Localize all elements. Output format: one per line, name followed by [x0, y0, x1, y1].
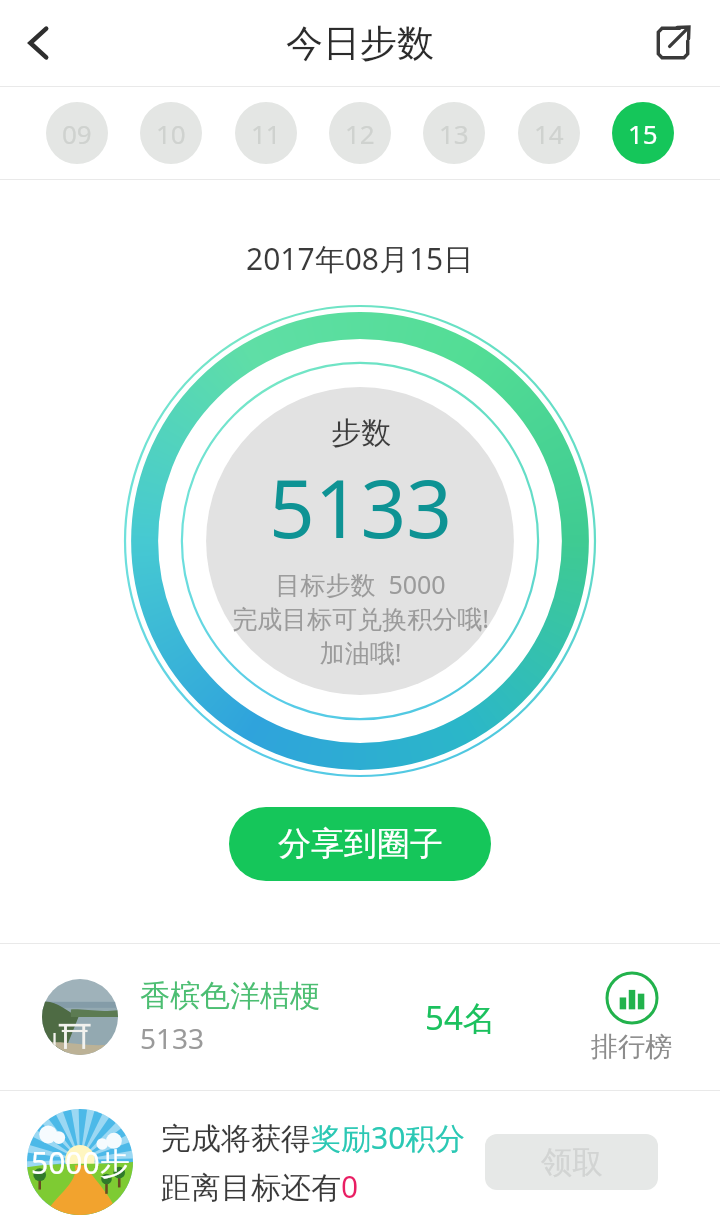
staticText: 5133: [269, 452, 453, 561]
staticText: 13: [439, 116, 469, 151]
staticText: 12: [345, 116, 375, 151]
staticText: 09: [62, 116, 92, 151]
button[interactable]: 14: [518, 102, 580, 164]
staticText: 10: [156, 116, 186, 151]
button[interactable]: 分享到圈子: [229, 807, 491, 881]
staticText: 2017年08月15日: [246, 238, 474, 279]
staticText: 目标步数 5000 完成目标可兑换积分哦! 加油哦!: [232, 567, 489, 669]
button[interactable]: 12: [329, 102, 391, 164]
staticText: 完成将获得奖励30积分: [161, 1117, 466, 1158]
staticText: 香槟色洋桔梗: [140, 977, 320, 1015]
staticText: 14: [534, 116, 564, 151]
button[interactable]: 排行榜: [591, 971, 672, 1064]
staticText: 步数: [331, 414, 391, 452]
staticText: 距离目标还有0: [161, 1166, 359, 1207]
staticText: 11: [251, 116, 281, 151]
button[interactable]: Share: [640, 10, 706, 76]
button[interactable]: 09: [46, 102, 108, 164]
button[interactable]: 15: [612, 102, 674, 164]
button[interactable]: 13: [423, 102, 485, 164]
staticText: 15: [628, 116, 658, 151]
button[interactable]: Back: [6, 10, 72, 76]
button[interactable]: 香槟色洋桔梗: [0, 944, 720, 1090]
staticText: 分享到圈子: [278, 823, 443, 865]
staticText: 5000步: [31, 1142, 130, 1183]
staticText: 领取: [541, 1143, 603, 1182]
staticText: 5133: [140, 1019, 205, 1057]
button[interactable]: 10: [140, 102, 202, 164]
button[interactable]: 领取: [485, 1134, 658, 1190]
button[interactable]: 11: [235, 102, 297, 164]
staticText: 54名: [425, 995, 496, 1040]
staticText: 排行榜: [591, 1030, 672, 1064]
staticText: 今日步数: [286, 20, 434, 67]
